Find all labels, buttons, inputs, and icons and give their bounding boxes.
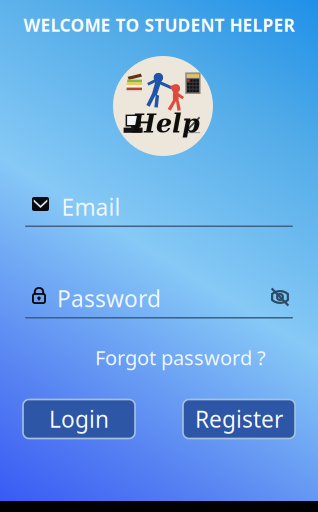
button[interactable]: Login bbox=[23, 399, 135, 438]
staticText: Register bbox=[195, 404, 283, 434]
button[interactable]: Register bbox=[183, 399, 295, 438]
staticText: Forgot password ? bbox=[95, 344, 266, 371]
button[interactable]: Show password bbox=[267, 288, 293, 306]
button[interactable]: Forgot password ? bbox=[0, 318, 318, 367]
staticText: Help bbox=[132, 109, 200, 138]
staticText: Password bbox=[57, 283, 161, 313]
staticText: Email bbox=[61, 192, 120, 222]
staticText: WELCOME TO STUDENT HELPER bbox=[23, 13, 294, 36]
staticText: Login bbox=[49, 404, 109, 434]
